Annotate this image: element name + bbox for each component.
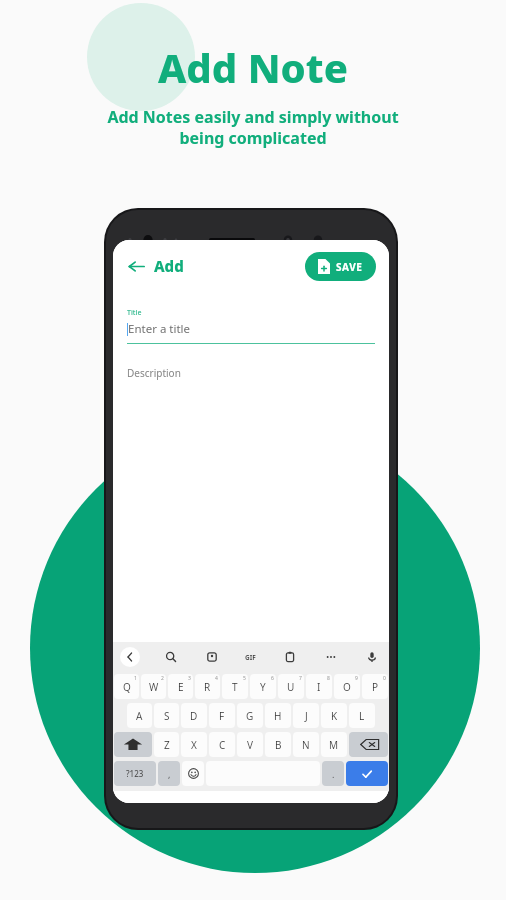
button[interactable]: E [168,674,193,699]
staticText: T [232,680,238,694]
button[interactable]: B [265,732,291,757]
staticText: U [287,680,295,694]
button[interactable]: F [209,703,235,728]
button[interactable]: Z [154,732,179,757]
staticText: J [305,709,308,723]
staticText: Title [127,308,142,318]
other: Back [128,258,145,275]
staticText: 1 [134,675,137,682]
staticText: 7 [299,675,302,682]
staticText: GIF [245,653,256,662]
staticText: 6 [271,675,274,682]
staticText: 5 [243,675,246,682]
staticText: 4 [215,675,218,682]
button[interactable]: J [293,703,319,728]
button[interactable]: , [158,761,180,786]
button[interactable]: Clipboard [280,647,300,667]
staticText: W [149,680,159,694]
staticText: H [274,709,282,723]
staticText: X [191,738,197,752]
staticText: Add [154,256,184,276]
button[interactable]: N [293,732,319,757]
button[interactable]: C [209,732,235,757]
button[interactable]: SAVE [305,252,376,281]
staticText: 2 [161,675,164,682]
staticText: Z [164,738,170,752]
button[interactable]: Stickers [202,647,222,667]
button[interactable]: L [349,703,375,728]
button[interactable]: Search [161,647,181,667]
staticText: M [329,738,339,752]
staticText: SAVE [336,260,363,274]
staticText: I [317,680,321,694]
staticText: Y [260,680,266,694]
staticText: F [219,709,225,723]
staticText: E [178,680,184,694]
button[interactable]: Collapse toolbar [120,647,140,667]
staticText: Description [127,366,181,380]
button[interactable]: Q [114,674,139,699]
button[interactable]: GIF [243,651,258,664]
button[interactable]: G [237,703,263,728]
button[interactable]: I [306,674,332,699]
button[interactable]: V [237,732,263,757]
staticText: 0 [383,675,386,682]
staticText: N [302,738,310,752]
staticText: G [246,709,254,723]
staticText: C [219,738,226,752]
button[interactable]: X [181,732,207,757]
staticText: R [204,680,211,694]
button[interactable]: T [222,674,248,699]
button[interactable]: O [334,674,360,699]
button[interactable]: S [154,703,179,728]
button[interactable]: P [362,674,388,699]
button[interactable]: A [127,703,152,728]
staticText: A [136,709,143,723]
button[interactable]: K [321,703,347,728]
button[interactable]: More options [321,647,341,667]
button[interactable]: D [181,703,207,728]
staticText: D [190,709,198,723]
button[interactable]: Y [250,674,276,699]
button[interactable]: W [141,674,166,699]
button[interactable]: M [321,732,347,757]
button[interactable]: U [278,674,304,699]
button[interactable]: ?123 [114,761,156,786]
staticText: S [164,709,170,723]
staticText: Enter a title [128,321,191,337]
button[interactable]: R [195,674,220,699]
button[interactable]: Voice input [362,647,382,667]
staticText: . [332,768,335,780]
button[interactable]: Shift [114,732,152,757]
staticText: B [275,738,282,752]
staticText: P [372,680,379,694]
button[interactable]: Emoji [182,761,204,786]
button[interactable]: . [322,761,344,786]
staticText: V [247,738,253,752]
staticText: Add Note [158,40,348,94]
staticText: O [343,680,351,694]
staticText: 9 [355,675,358,682]
staticText: 3 [188,675,191,682]
staticText: K [331,709,338,723]
staticText: Q [123,680,131,694]
staticText: Add Notes easily and simply without bein… [107,106,399,149]
staticText: L [359,709,365,723]
staticText: 8 [327,675,330,682]
button[interactable]: H [265,703,291,728]
staticText: , [168,768,171,780]
staticText: ?123 [126,768,144,779]
button[interactable]: Enter [346,761,388,786]
button[interactable]: Back [126,250,186,282]
button[interactable]: Backspace [349,732,388,757]
